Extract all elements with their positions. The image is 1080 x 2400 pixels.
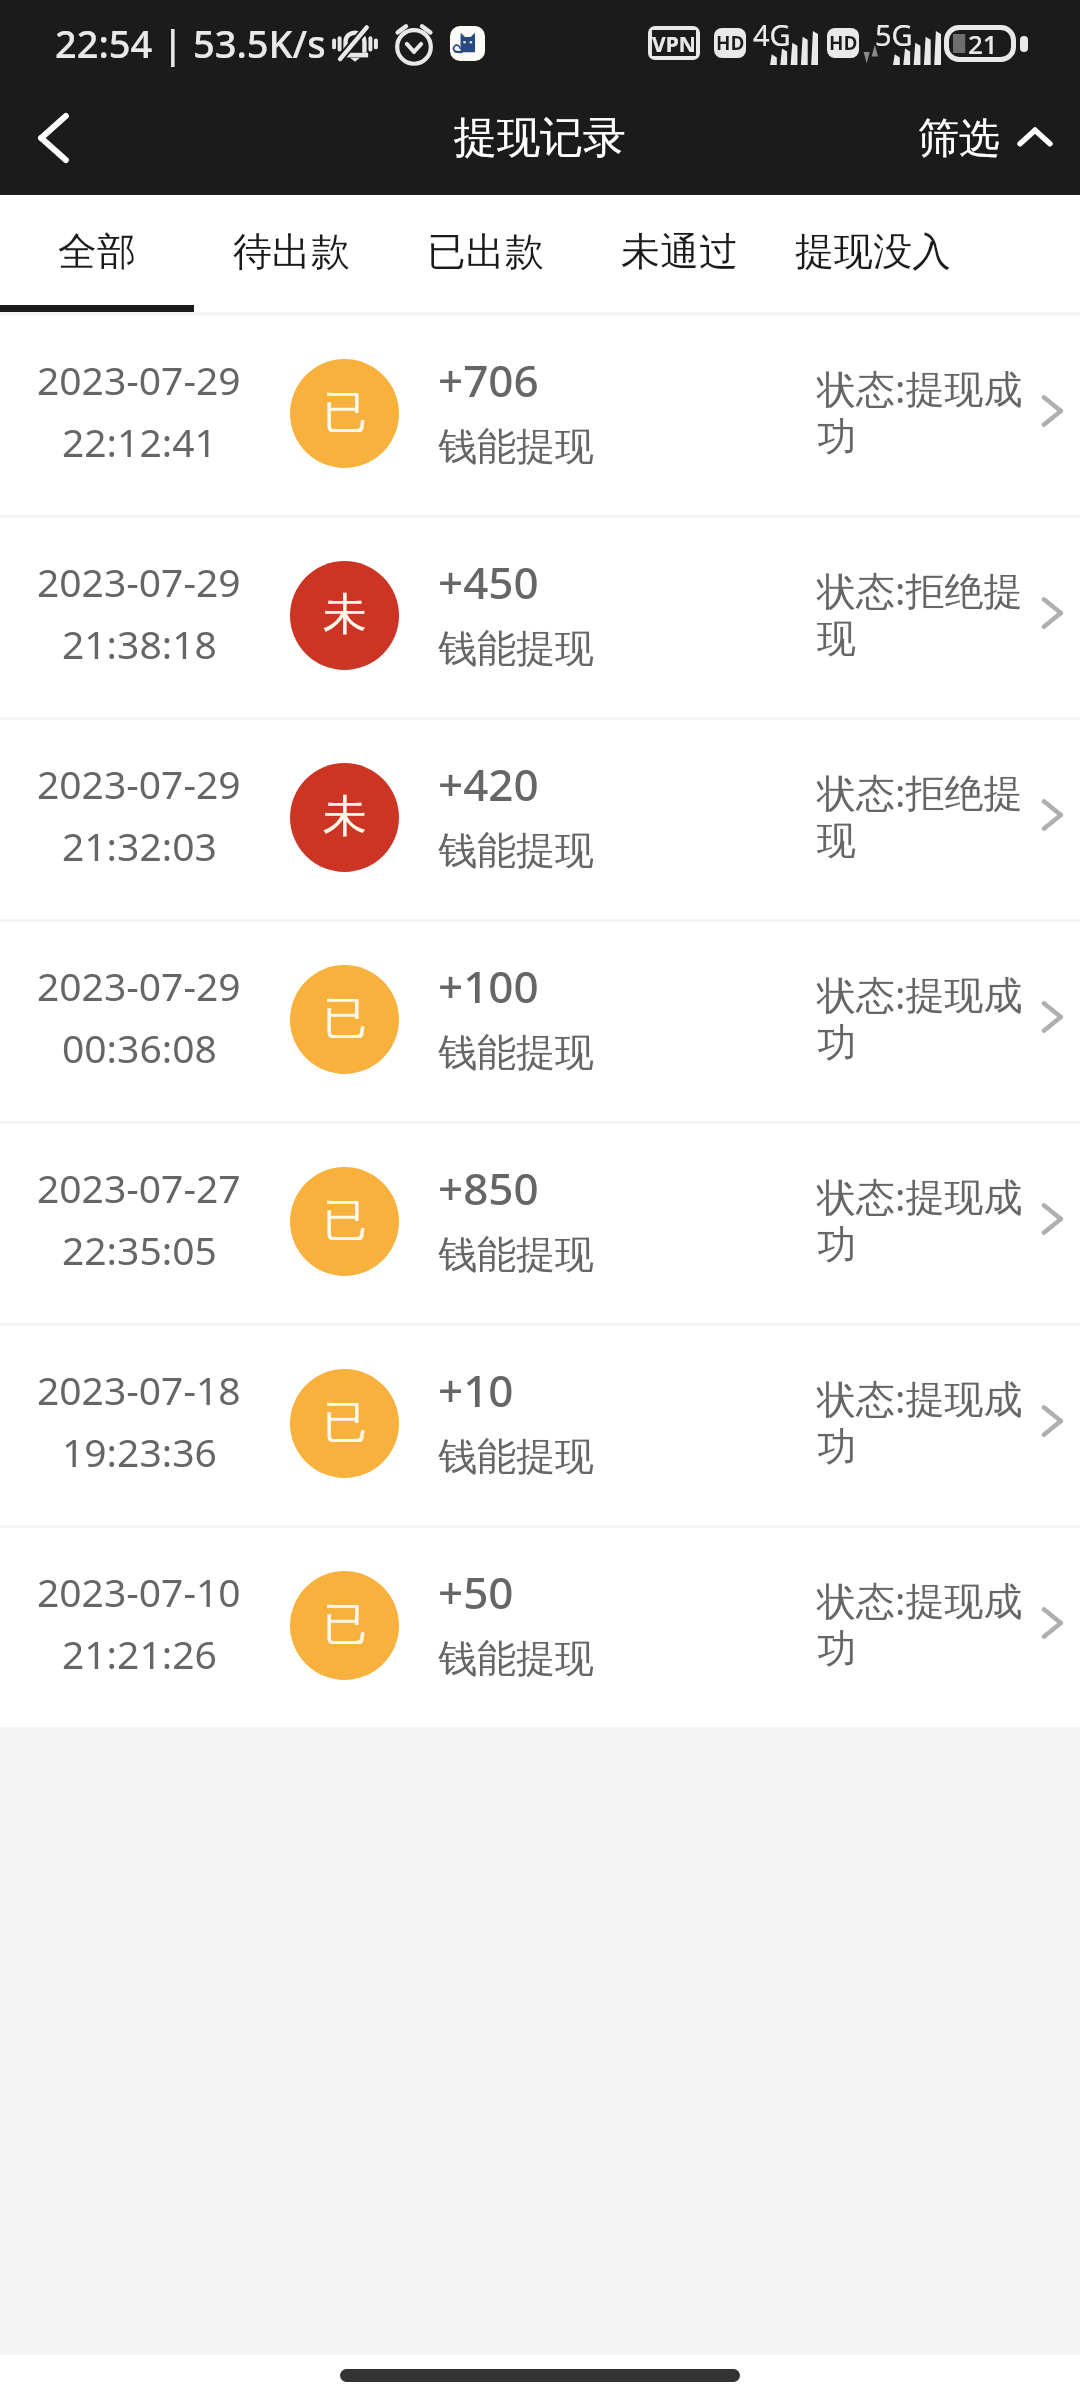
staticText: 状态:提现成功	[817, 1169, 1029, 1270]
staticText: +706	[438, 350, 539, 410]
staticText: 21:21:26	[62, 1627, 217, 1680]
button[interactable]: 2023-07-29	[0, 518, 1080, 717]
button[interactable]: 全部	[0, 195, 194, 308]
staticText: 2023-07-29	[37, 959, 241, 1012]
staticText: 钱能提现	[438, 1028, 594, 1077]
staticText: 未	[323, 587, 367, 642]
staticText: 19:23:36	[62, 1425, 217, 1478]
staticText: 状态:提现成功	[817, 1573, 1029, 1674]
button[interactable]: 2023-07-29	[0, 316, 1080, 515]
staticText: 状态:拒绝提现	[817, 765, 1029, 866]
staticText: 状态:提现成功	[817, 1371, 1029, 1472]
staticText: 钱能提现	[438, 1230, 594, 1279]
button[interactable]: Back	[0, 90, 96, 195]
staticText: 状态:提现成功	[817, 361, 1029, 462]
staticText: 状态:提现成功	[817, 967, 1029, 1068]
staticText: 钱能提现	[438, 422, 594, 471]
staticText: 5G	[875, 15, 913, 54]
staticText: 2023-07-27	[37, 1161, 241, 1214]
staticText: 22:12:41	[62, 415, 217, 468]
staticText: 4G	[753, 15, 791, 54]
button[interactable]: 2023-07-18	[0, 1326, 1080, 1525]
staticText: VPN	[652, 30, 696, 56]
button[interactable]: 2023-07-29	[0, 720, 1080, 919]
staticText: 筛选	[918, 113, 1000, 165]
staticText: 已	[323, 991, 367, 1046]
staticText: 2023-07-29	[37, 555, 241, 608]
staticText: +450	[438, 552, 539, 612]
button[interactable]: 待出款	[194, 195, 388, 308]
button[interactable]: 提现没入	[776, 195, 970, 308]
staticText: 已	[323, 1193, 367, 1248]
staticText: 全部	[58, 227, 136, 276]
staticText: 2023-07-29	[37, 757, 241, 810]
staticText: 22:54 | 53.5K/s	[55, 17, 326, 69]
staticText: 已	[323, 1597, 367, 1652]
staticText: 21	[968, 26, 998, 61]
staticText: 提现没入	[795, 227, 951, 276]
staticText: +420	[438, 754, 539, 814]
button[interactable]: 2023-07-29	[0, 922, 1080, 1121]
staticText: 21:32:03	[62, 819, 217, 872]
staticText: 状态:拒绝提现	[817, 563, 1029, 664]
staticText: 22:35:05	[62, 1223, 217, 1276]
staticText: 未通过	[621, 227, 738, 276]
staticText: HD	[829, 30, 858, 56]
staticText: 21:38:18	[62, 617, 217, 670]
staticText: +850	[438, 1158, 539, 1218]
staticText: +100	[438, 956, 539, 1016]
button[interactable]: 2023-07-10	[0, 1528, 1080, 1727]
staticText: 00:36:08	[62, 1021, 217, 1074]
staticText: 未	[323, 789, 367, 844]
staticText: 提现记录	[454, 111, 626, 165]
staticText: +50	[438, 1562, 514, 1622]
button[interactable]: 未通过	[582, 195, 776, 308]
staticText: 已	[323, 385, 367, 440]
button[interactable]: 筛选	[898, 90, 1080, 195]
staticText: 待出款	[233, 227, 350, 276]
staticText: 钱能提现	[438, 624, 594, 673]
button[interactable]: 2023-07-27	[0, 1124, 1080, 1323]
staticText: 钱能提现	[438, 826, 594, 875]
staticText: +10	[438, 1360, 514, 1420]
button[interactable]: 已出款	[388, 195, 582, 308]
staticText: 钱能提现	[438, 1432, 594, 1481]
staticText: 已出款	[427, 227, 544, 276]
staticText: 2023-07-18	[37, 1363, 241, 1416]
staticText: HD	[716, 30, 745, 56]
staticText: 2023-07-10	[37, 1565, 241, 1618]
staticText: 已	[323, 1395, 367, 1450]
staticText: 钱能提现	[438, 1634, 594, 1683]
staticText: 2023-07-29	[37, 353, 241, 406]
